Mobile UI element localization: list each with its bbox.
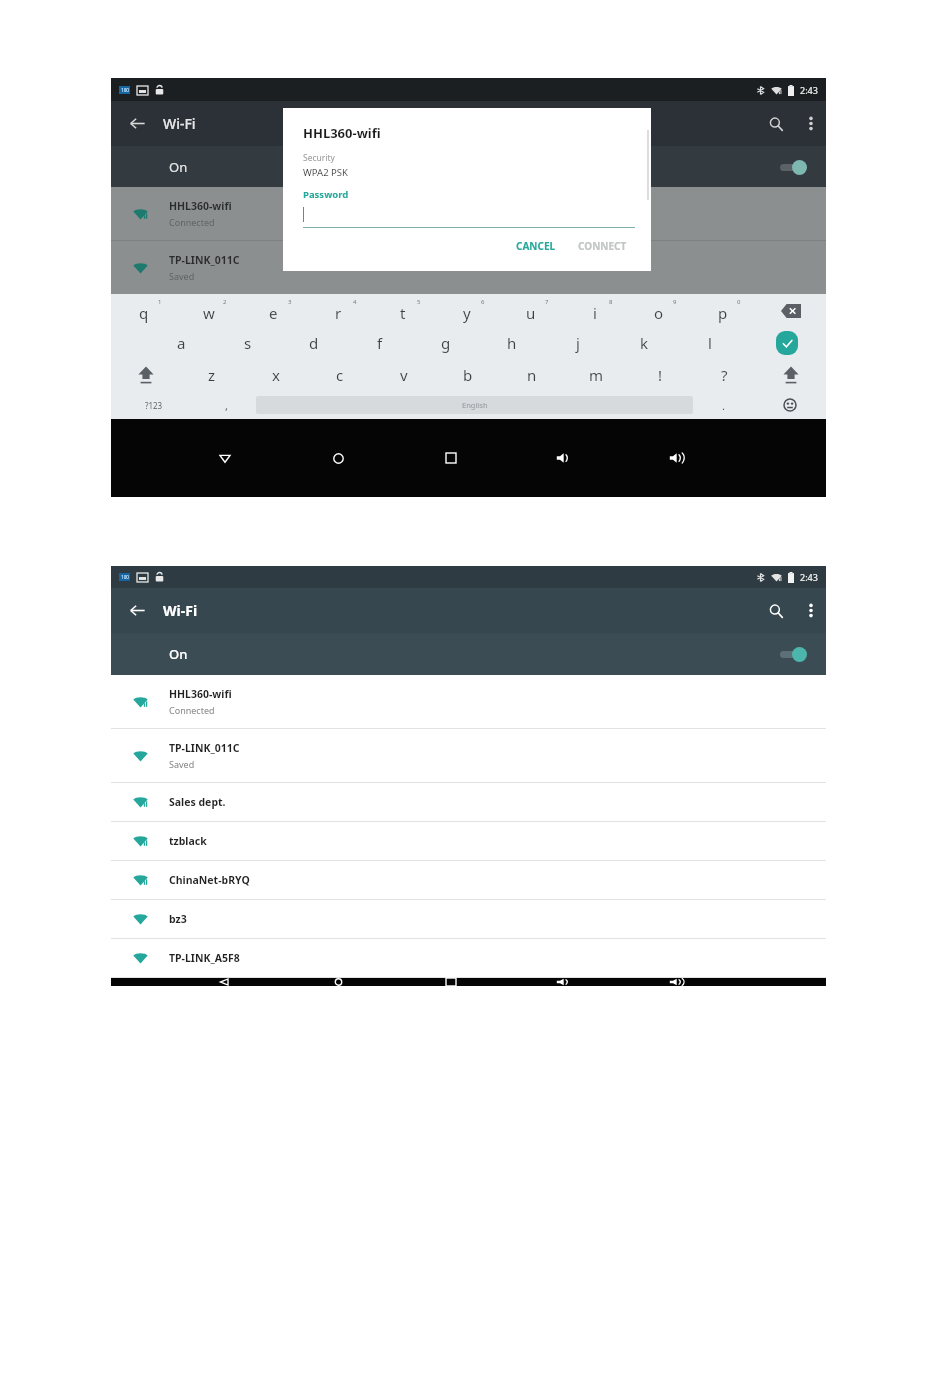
button[interactable]: Shift	[111, 359, 180, 391]
button[interactable]: ?	[692, 359, 756, 391]
button[interactable]: Back	[111, 588, 826, 633]
staticText: Saved	[169, 758, 195, 770]
button[interactable]: TP-LINK_011C	[111, 729, 826, 783]
button[interactable]: Sales dept.	[111, 783, 826, 822]
button[interactable]: Home	[317, 419, 359, 497]
button[interactable]: Volume down	[543, 419, 585, 497]
button[interactable]: Volume up	[656, 419, 698, 497]
button[interactable]: TP-LINK_011C	[111, 241, 826, 294]
button[interactable]: v	[372, 359, 436, 391]
button[interactable]: p	[691, 294, 755, 327]
button[interactable]: Back	[111, 101, 826, 146]
button[interactable]: Back	[111, 101, 163, 146]
button[interactable]: Recents	[430, 978, 472, 986]
button[interactable]: On	[111, 633, 826, 675]
button[interactable]: Emoji	[753, 391, 826, 419]
button[interactable]: e	[241, 294, 306, 327]
staticText: j	[576, 333, 580, 353]
button[interactable]: HHL360-wifi	[111, 675, 826, 729]
staticText: 8	[609, 298, 613, 306]
staticText: Connected	[169, 704, 215, 716]
button[interactable]: h	[479, 327, 545, 359]
button[interactable]: z	[180, 359, 244, 391]
button[interactable]: k	[611, 327, 677, 359]
button[interactable]: Volume up	[656, 978, 698, 986]
button[interactable]: tzblack	[111, 822, 826, 861]
button[interactable]: CONNECT	[570, 235, 635, 257]
button[interactable]: s	[215, 327, 281, 359]
staticText: e	[269, 303, 278, 323]
button[interactable]: g	[413, 327, 479, 359]
button[interactable]: ?123	[111, 391, 196, 419]
staticText: 2	[223, 298, 227, 306]
staticText: Wi-Fi	[163, 114, 196, 133]
button[interactable]: Search	[756, 101, 796, 146]
staticText: s	[244, 333, 252, 353]
staticText: ?	[721, 365, 728, 385]
button[interactable]: More options	[796, 588, 826, 633]
staticText: HHL360-wifi	[303, 124, 381, 142]
button[interactable]: Backspace	[755, 294, 826, 327]
button[interactable]: a	[148, 327, 215, 359]
button[interactable]: HHL360-wifi	[111, 187, 826, 241]
button[interactable]: w	[176, 294, 241, 327]
button[interactable]: Back	[204, 978, 246, 986]
button[interactable]: d	[281, 327, 347, 359]
staticText: c	[336, 365, 344, 385]
button[interactable]: x	[244, 359, 308, 391]
button[interactable]: n	[500, 359, 564, 391]
staticText: tzblack	[169, 834, 207, 848]
staticText: Saved	[169, 270, 195, 282]
button[interactable]: Search	[756, 588, 796, 633]
staticText: TP-LINK_A5F8	[169, 951, 240, 965]
button[interactable]: English	[256, 396, 693, 414]
button[interactable]: q	[111, 294, 176, 327]
button[interactable]: Back	[204, 419, 246, 497]
button[interactable]: CANCEL	[508, 235, 564, 257]
button[interactable]: o	[627, 294, 691, 327]
button[interactable]: b	[436, 359, 500, 391]
button[interactable]: t	[371, 294, 435, 327]
button[interactable]: r	[306, 294, 371, 327]
staticText: 1	[158, 298, 162, 306]
button[interactable]: Shift	[756, 359, 826, 391]
button[interactable]: Back	[111, 588, 163, 633]
staticText: ChinaNet-bRYQ	[169, 873, 250, 887]
staticText: r	[335, 303, 342, 323]
button[interactable]: y	[435, 294, 499, 327]
staticText: !	[658, 365, 663, 385]
staticText: HHL360-wifi	[169, 199, 232, 213]
button[interactable]: .	[693, 391, 753, 419]
staticText: CONNECT	[578, 239, 627, 253]
button[interactable]: f	[347, 327, 413, 359]
staticText: g	[441, 333, 451, 353]
button[interactable]: Volume down	[543, 978, 585, 986]
button[interactable]: c	[308, 359, 372, 391]
button[interactable]	[778, 159, 808, 175]
button[interactable]: u	[499, 294, 563, 327]
button[interactable]: ChinaNet-bRYQ	[111, 861, 826, 900]
staticText: WPA2 PSK	[303, 166, 348, 179]
button[interactable]: j	[545, 327, 611, 359]
button[interactable]: Recents	[430, 419, 472, 497]
staticText: w	[203, 303, 215, 323]
button[interactable]: Enter	[750, 327, 823, 359]
button[interactable]: More options	[796, 101, 826, 146]
button[interactable]: TP-LINK_A5F8	[111, 939, 826, 978]
staticText: 2:43	[800, 571, 818, 583]
button[interactable]: bz3	[111, 900, 826, 939]
staticText: Security	[303, 152, 335, 164]
button[interactable]: l	[677, 327, 743, 359]
button[interactable]: On	[111, 146, 826, 187]
staticText: o	[654, 303, 664, 323]
button[interactable]	[778, 646, 808, 662]
button[interactable]: m	[564, 359, 628, 391]
button[interactable]: ,	[196, 391, 256, 419]
staticText: 5	[417, 298, 421, 306]
staticText: k	[640, 333, 649, 353]
button[interactable]: i	[563, 294, 627, 327]
button[interactable]: Home	[317, 978, 359, 986]
staticText: ,	[225, 398, 228, 413]
button[interactable]: !	[628, 359, 692, 391]
staticText: z	[208, 365, 216, 385]
